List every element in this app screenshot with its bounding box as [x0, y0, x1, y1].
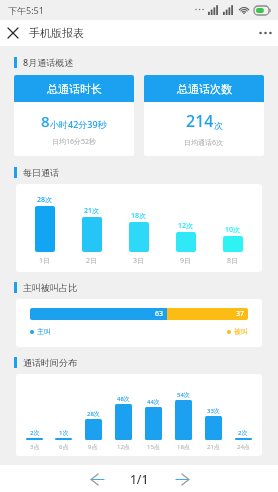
staticText: 48次: [117, 395, 130, 403]
staticText: 日均通话6次: [184, 138, 224, 148]
staticText: 总通话次数: [177, 82, 232, 96]
staticText: 18次: [131, 211, 147, 221]
staticText: 8月通话概述: [23, 56, 74, 68]
staticText: 24点: [237, 443, 250, 451]
staticText: 下午5:51: [8, 4, 44, 16]
staticText: 9日: [180, 256, 192, 266]
staticText: 63: [155, 309, 164, 319]
staticText: 每日通话: [23, 167, 59, 178]
button[interactable]: 63: [16, 299, 262, 347]
staticText: 12次: [178, 221, 194, 231]
staticText: 6点: [59, 443, 69, 451]
staticText: 通话时间分布: [23, 357, 77, 368]
staticText: 小时42分39秒: [50, 118, 107, 130]
button[interactable]: More options: [252, 20, 278, 46]
staticText: 总通话时长: [47, 82, 102, 96]
staticText: 28次: [87, 410, 100, 418]
staticText: 1日: [39, 256, 51, 266]
staticText: 37: [236, 309, 245, 319]
staticText: 3点: [30, 443, 40, 451]
staticText: 2次: [30, 429, 40, 437]
staticText: 21次: [84, 206, 100, 216]
button[interactable]: Next page: [167, 467, 197, 491]
staticText: 28次: [37, 195, 53, 205]
button[interactable]: 总通话时长: [14, 75, 134, 156]
staticText: 1/1: [130, 471, 149, 487]
staticText: 手机版报表: [29, 26, 84, 40]
staticText: 15点: [147, 443, 160, 451]
staticText: 18点: [177, 443, 190, 451]
staticText: 214: [186, 110, 214, 132]
button[interactable]: 2次: [16, 374, 262, 456]
staticText: 1次: [59, 429, 69, 437]
staticText: 9点: [88, 443, 98, 451]
staticText: 8日: [227, 256, 239, 266]
staticText: 8: [41, 111, 50, 131]
staticText: 被叫: [234, 327, 248, 336]
button[interactable]: 28次: [16, 184, 262, 272]
staticText: 主叫被叫占比: [23, 282, 77, 293]
staticText: 12点: [117, 443, 130, 451]
staticText: 3日: [133, 256, 145, 266]
staticText: 21点: [207, 443, 220, 451]
staticText: 日均16分52秒: [52, 137, 97, 147]
staticText: 2日: [86, 256, 98, 266]
staticText: 次: [214, 120, 223, 131]
staticText: 10次: [225, 225, 241, 235]
button[interactable]: 总通话次数: [144, 75, 264, 156]
button[interactable]: Previous page: [82, 467, 112, 491]
staticText: 54次: [177, 391, 190, 399]
staticText: 2次: [238, 429, 248, 437]
staticText: 44次: [147, 398, 160, 406]
button[interactable]: Close: [0, 20, 26, 46]
staticText: 33次: [207, 407, 220, 415]
staticText: 主叫: [37, 327, 51, 336]
